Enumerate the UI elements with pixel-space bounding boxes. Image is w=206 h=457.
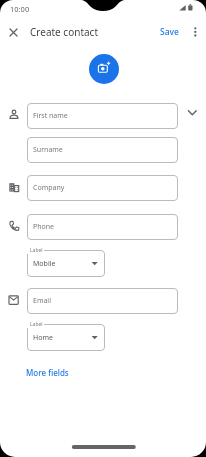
staticText: Company bbox=[33, 183, 65, 193]
staticText: More fields bbox=[26, 367, 69, 378]
staticText: Home bbox=[33, 333, 53, 343]
button[interactable]: Save bbox=[153, 24, 186, 40]
staticText: 10:00 bbox=[10, 4, 30, 14]
staticText: Email bbox=[33, 296, 51, 306]
staticText: First name bbox=[33, 111, 68, 121]
button[interactable]: First name bbox=[27, 103, 178, 129]
staticText: Phone bbox=[33, 222, 55, 232]
button[interactable] bbox=[89, 54, 119, 84]
staticText: Create contact bbox=[30, 25, 99, 39]
button[interactable]: Surname bbox=[27, 137, 178, 163]
staticText: Mobile bbox=[33, 259, 56, 269]
button[interactable]: Home bbox=[27, 324, 105, 351]
button[interactable]: Phone bbox=[27, 214, 178, 240]
button[interactable] bbox=[184, 104, 201, 121]
button[interactable]: Email bbox=[27, 288, 178, 314]
button[interactable]: Company bbox=[27, 175, 178, 201]
staticText: Label bbox=[30, 321, 43, 328]
button[interactable] bbox=[6, 25, 21, 40]
button[interactable] bbox=[189, 25, 202, 39]
button[interactable]: More fields bbox=[26, 367, 69, 378]
staticText: Surname bbox=[33, 145, 63, 155]
staticText: Save bbox=[160, 26, 179, 38]
button[interactable]: Mobile bbox=[27, 250, 105, 277]
staticText: Label bbox=[30, 247, 43, 254]
